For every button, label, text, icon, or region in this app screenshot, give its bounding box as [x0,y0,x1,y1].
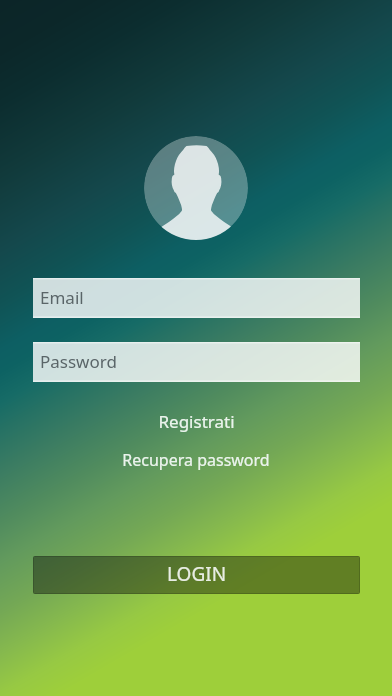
staticText: Password [40,350,117,373]
staticText: Email [40,286,84,309]
button[interactable]: Profile photo [144,136,248,240]
button[interactable]: Registrati [150,408,243,435]
staticText: LOGIN [167,561,227,587]
staticText: Recupera password [122,449,270,471]
staticText: Registrati [158,410,235,433]
button[interactable]: Password [33,342,360,382]
button[interactable]: LOGIN [33,556,360,594]
button[interactable]: Recupera password [114,447,278,473]
button[interactable]: Email [33,278,360,318]
